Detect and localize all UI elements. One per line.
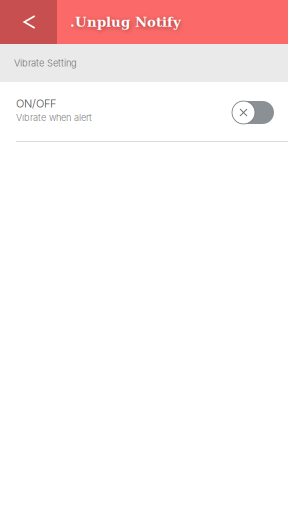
button[interactable]: ON/OFF — [0, 82, 288, 142]
button[interactable]: Back — [0, 0, 57, 44]
staticText: Vibrate when alert — [16, 112, 92, 123]
staticText: Vibrate Setting — [14, 57, 77, 69]
staticText: .Unplug Notify — [70, 14, 181, 30]
staticText: ON/OFF — [16, 97, 56, 110]
